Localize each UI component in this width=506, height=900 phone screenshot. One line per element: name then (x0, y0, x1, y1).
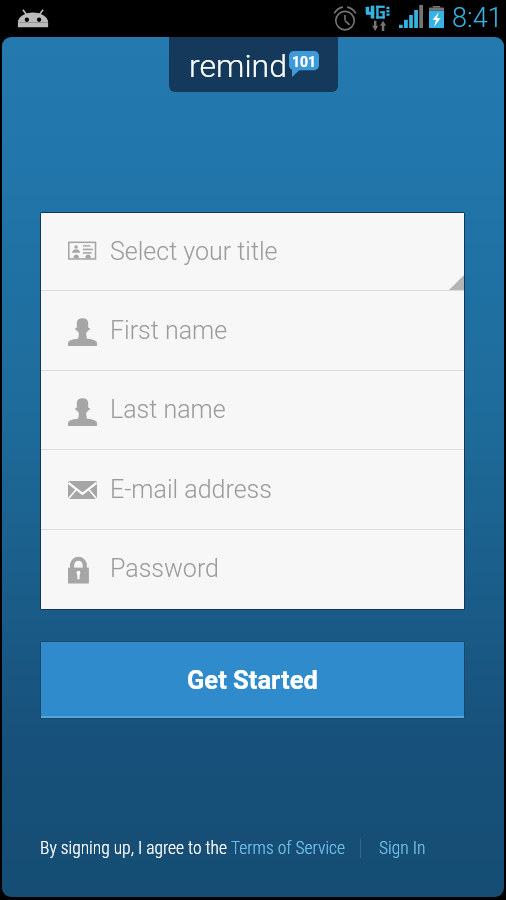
staticText: 8:41 (452, 2, 503, 34)
button[interactable]: First name (41, 291, 464, 371)
staticText: Last name (110, 395, 226, 424)
button[interactable]: Terms of Service (231, 833, 346, 863)
staticText: Get Started (187, 665, 318, 695)
staticText: remind (189, 47, 287, 85)
button[interactable]: remind101 (169, 37, 338, 92)
button[interactable]: Get Started (41, 642, 464, 718)
staticText: Select your title (110, 237, 278, 266)
staticText: Sign In (379, 838, 426, 859)
button[interactable]: Password (41, 530, 464, 609)
button[interactable]: E-mail address (41, 450, 464, 530)
staticText: 101 (292, 54, 317, 70)
staticText: First name (110, 316, 228, 345)
staticText: E-mail address (110, 475, 272, 504)
staticText: By signing up, I agree to the (40, 838, 231, 859)
button[interactable]: Select your title (41, 213, 464, 291)
staticText: Terms of Service (231, 838, 346, 859)
button[interactable]: Last name (41, 371, 464, 450)
button[interactable]: Sign In (379, 833, 426, 863)
staticText: Password (110, 554, 219, 583)
